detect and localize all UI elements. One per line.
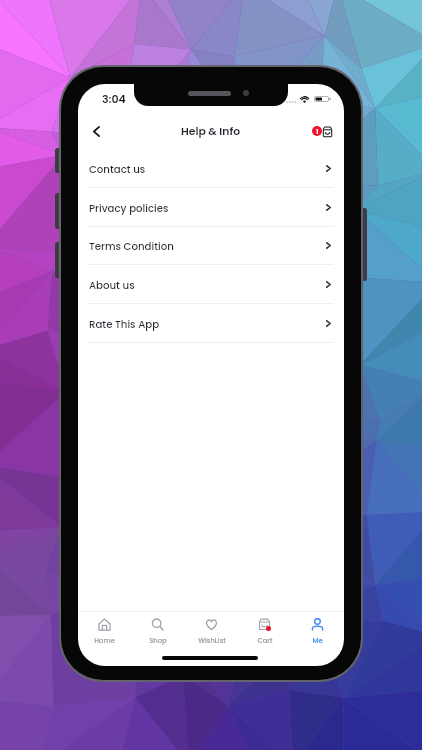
staticText: Shop [149,636,167,646]
button[interactable]: Contact us [78,149,344,188]
button[interactable]: Privacy policies [78,188,344,227]
button[interactable]: Rate This App [78,304,344,343]
button[interactable]: Cart [238,613,291,648]
button[interactable]: Shop [131,613,184,648]
staticText: Terms Condition [89,239,174,253]
button[interactable]: About us [78,265,344,304]
button[interactable]: Cart [306,118,338,145]
staticText: Me [312,636,323,646]
staticText: Contact us [89,162,146,176]
staticText: Help & Info [181,124,241,139]
staticText: 1 [316,127,319,136]
staticText: Cart [257,636,273,646]
button[interactable]: Me [291,613,344,648]
button[interactable]: Terms Condition [78,226,344,265]
staticText: 3:04 [102,91,126,106]
button[interactable]: Back [83,117,109,145]
staticText: Home [94,636,115,646]
button[interactable]: WishList [185,613,238,648]
staticText: About us [89,278,135,292]
staticText: Privacy policies [89,201,169,215]
button[interactable]: Home [78,613,131,648]
staticText: Rate This App [89,317,160,331]
staticText: WishList [198,636,226,646]
